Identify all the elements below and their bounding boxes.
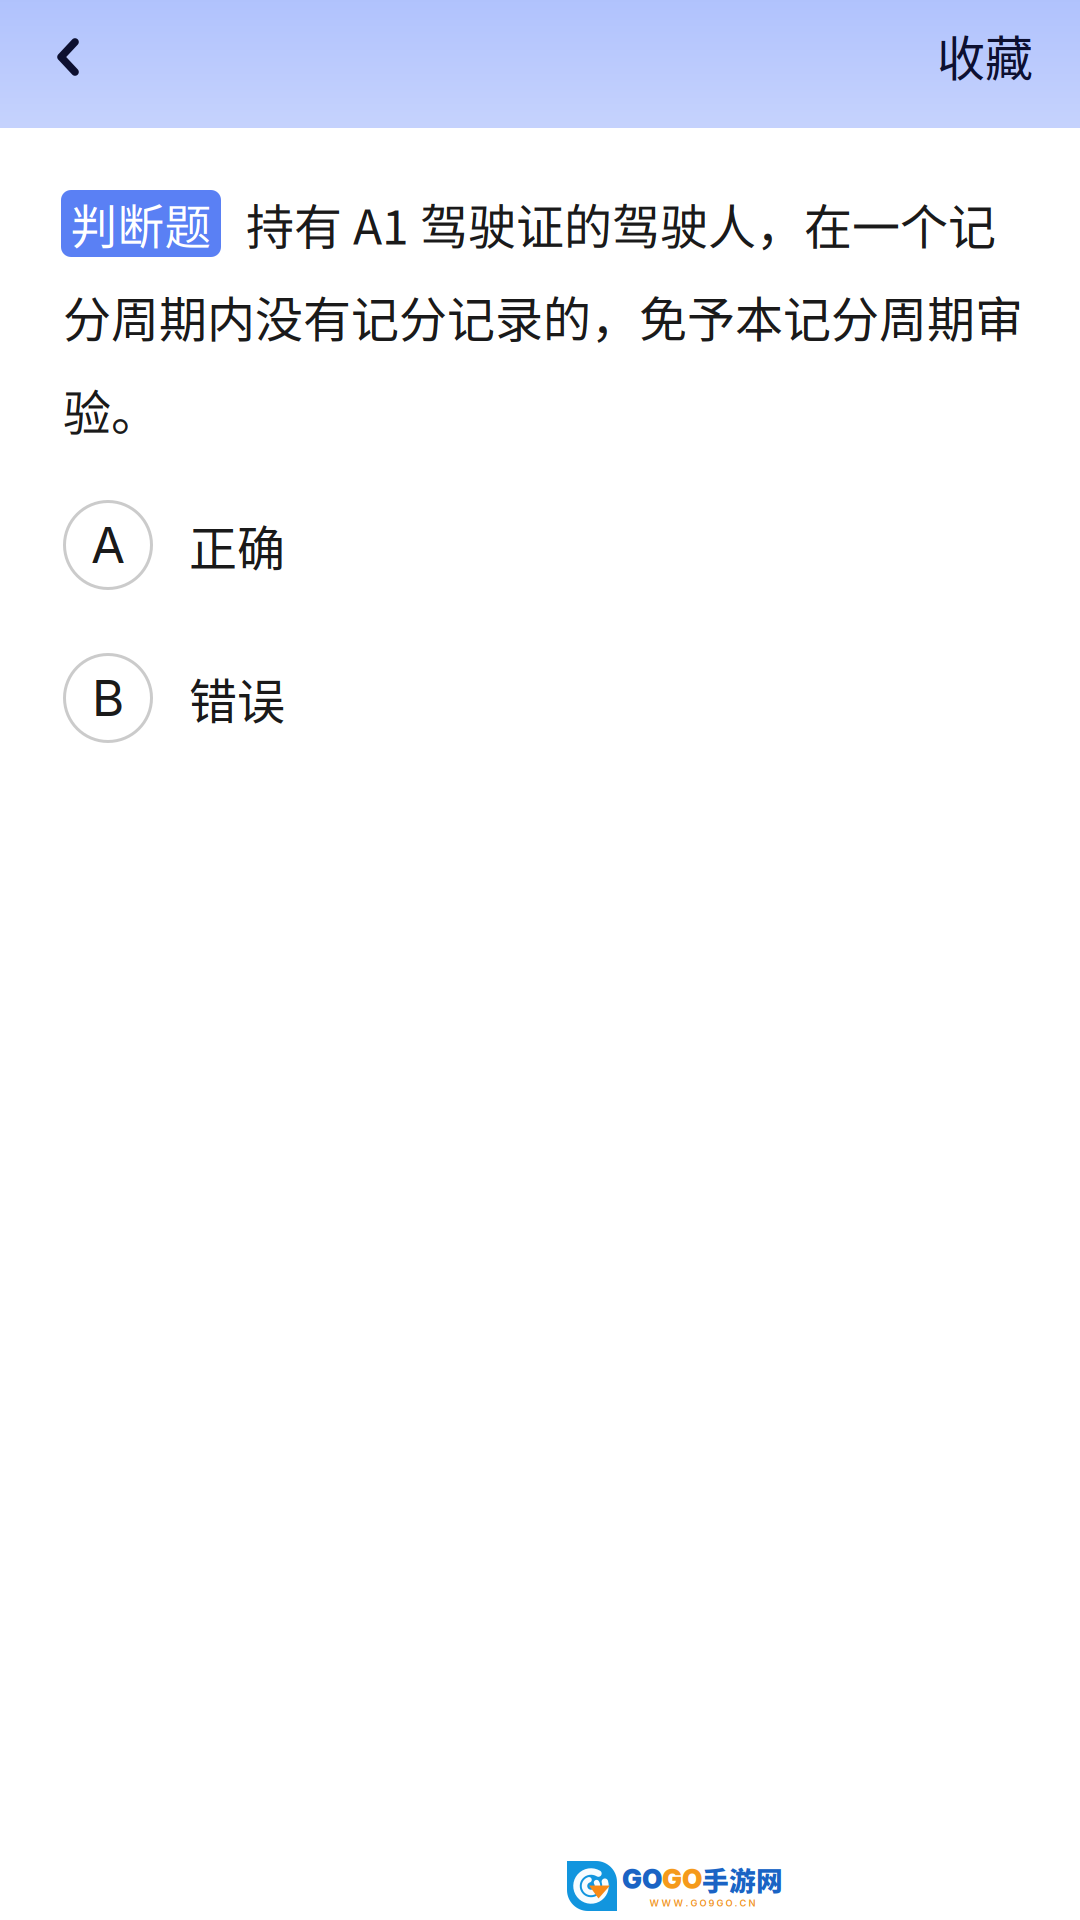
staticText: 持有 A1 驾驶证的驾驶人，在一个记 bbox=[246, 189, 996, 258]
staticText: 分周期内没有记分记录的，免予本记分周期审 bbox=[63, 281, 1023, 351]
staticText: 错误 bbox=[189, 663, 285, 733]
button[interactable]: A bbox=[0, 470, 1080, 620]
staticText: W W W . G O 9 G O . C N bbox=[649, 1897, 755, 1909]
staticText: B bbox=[92, 668, 124, 728]
staticText: GO bbox=[622, 1863, 662, 1895]
staticText: 收藏 bbox=[937, 20, 1033, 90]
staticText: 判断题 bbox=[70, 190, 211, 257]
staticText: A bbox=[91, 515, 125, 575]
button[interactable]: B bbox=[0, 623, 1080, 773]
staticText: 验。 bbox=[63, 375, 159, 444]
button[interactable]: 收藏 bbox=[937, 0, 1080, 128]
staticText: 正确 bbox=[189, 510, 285, 580]
button[interactable]: 返回 bbox=[0, 0, 130, 128]
staticText: 手游网 bbox=[702, 1860, 783, 1898]
staticText: GO bbox=[662, 1863, 702, 1895]
